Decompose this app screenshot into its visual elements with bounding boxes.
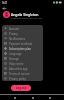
button[interactable]: Privacy policy bbox=[2, 76, 43, 81]
button[interactable]: Account bbox=[2, 26, 43, 31]
button[interactable]: Help centre bbox=[2, 61, 43, 66]
button[interactable]: Payment methods bbox=[2, 41, 43, 46]
staticText: Storage bbox=[9, 57, 19, 61]
button[interactable]: Back bbox=[2, 6, 7, 11]
staticText: Payment methods bbox=[9, 42, 33, 46]
button[interactable]: Recent apps bbox=[47, 95, 52, 100]
staticText: Privacy bbox=[9, 32, 18, 36]
button[interactable]: Notifications bbox=[2, 36, 43, 41]
staticText: 9:41 bbox=[2, 1, 8, 5]
button[interactable]: Language bbox=[2, 51, 43, 56]
staticText: Log out bbox=[16, 86, 27, 90]
button[interactable]: Log out bbox=[11, 85, 31, 91]
staticText: Terms of service bbox=[9, 72, 30, 76]
staticText: Help centre bbox=[9, 62, 24, 66]
button[interactable]: About this app bbox=[2, 66, 43, 71]
staticText: Language bbox=[9, 52, 22, 56]
staticText: Account bbox=[9, 27, 20, 31]
staticText: Subscription plan bbox=[9, 47, 31, 51]
button[interactable]: Storage bbox=[2, 56, 43, 61]
button[interactable]: Privacy bbox=[2, 31, 43, 36]
button[interactable]: Home bbox=[30, 95, 35, 100]
button[interactable]: Subscription plan bbox=[2, 46, 43, 51]
button[interactable]: Terms of service bbox=[2, 71, 43, 76]
staticText: Angela Singleton bbox=[11, 12, 39, 17]
button[interactable]: Back bbox=[12, 95, 17, 100]
staticText: Notifications bbox=[9, 37, 25, 41]
staticText: angela.singleton@email.com bbox=[11, 17, 43, 20]
staticText: About this app bbox=[9, 67, 28, 71]
staticText: Privacy policy bbox=[9, 77, 26, 81]
